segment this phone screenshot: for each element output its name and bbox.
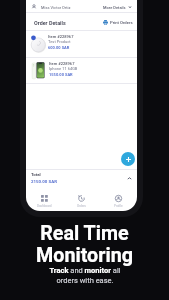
staticText: Dashboard [37, 204, 52, 208]
button[interactable]: Item #228967 [26, 30, 137, 55]
staticText: Orders [77, 204, 86, 208]
button[interactable]: Orders [63, 190, 100, 211]
staticText: Print Orders [110, 20, 133, 25]
staticText: Miss Victor Ortiz [41, 5, 71, 10]
staticText: Order Details [34, 20, 66, 26]
staticText: Item #228967 [49, 61, 75, 66]
button[interactable]: Print Orders [101, 18, 135, 27]
button[interactable]: Add order [121, 152, 135, 166]
staticText: Test Product [48, 39, 71, 44]
staticText: 2150.00 SAR [31, 179, 57, 184]
staticText: Total [31, 172, 41, 177]
staticText: Profile [114, 204, 123, 208]
staticText: Iphone 11 64GB [49, 66, 78, 71]
button[interactable]: Collapse [125, 174, 133, 182]
staticText: More Details [103, 5, 126, 10]
button[interactable]: Miss Victor Ortiz [26, 1, 137, 13]
button[interactable]: Item #228967 [26, 57, 137, 82]
staticText: Item #228967 [48, 34, 74, 39]
staticText: Real Time Monitoring [36, 222, 133, 267]
staticText: 600.00 SAR [48, 45, 70, 50]
staticText: 1550.00 SAR [49, 72, 73, 77]
button[interactable]: Profile [100, 190, 137, 211]
button[interactable]: Dashboard [26, 190, 63, 211]
staticText: Track and monitor all orders with ease. [49, 266, 121, 285]
